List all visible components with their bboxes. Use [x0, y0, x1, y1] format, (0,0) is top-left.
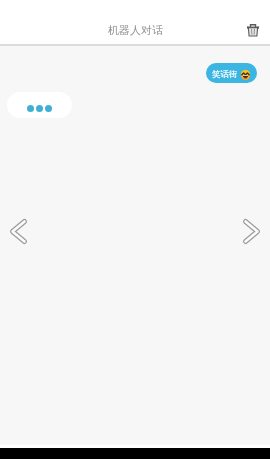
staticText: 机器人对话: [108, 23, 163, 37]
button[interactable]: Next: [235, 215, 267, 247]
button[interactable]: [7, 92, 72, 118]
button[interactable]: Previous: [2, 215, 34, 247]
button[interactable]: Delete conversation: [240, 16, 266, 42]
button[interactable]: 笑话街: [206, 63, 257, 83]
staticText: 笑话街: [212, 69, 238, 80]
